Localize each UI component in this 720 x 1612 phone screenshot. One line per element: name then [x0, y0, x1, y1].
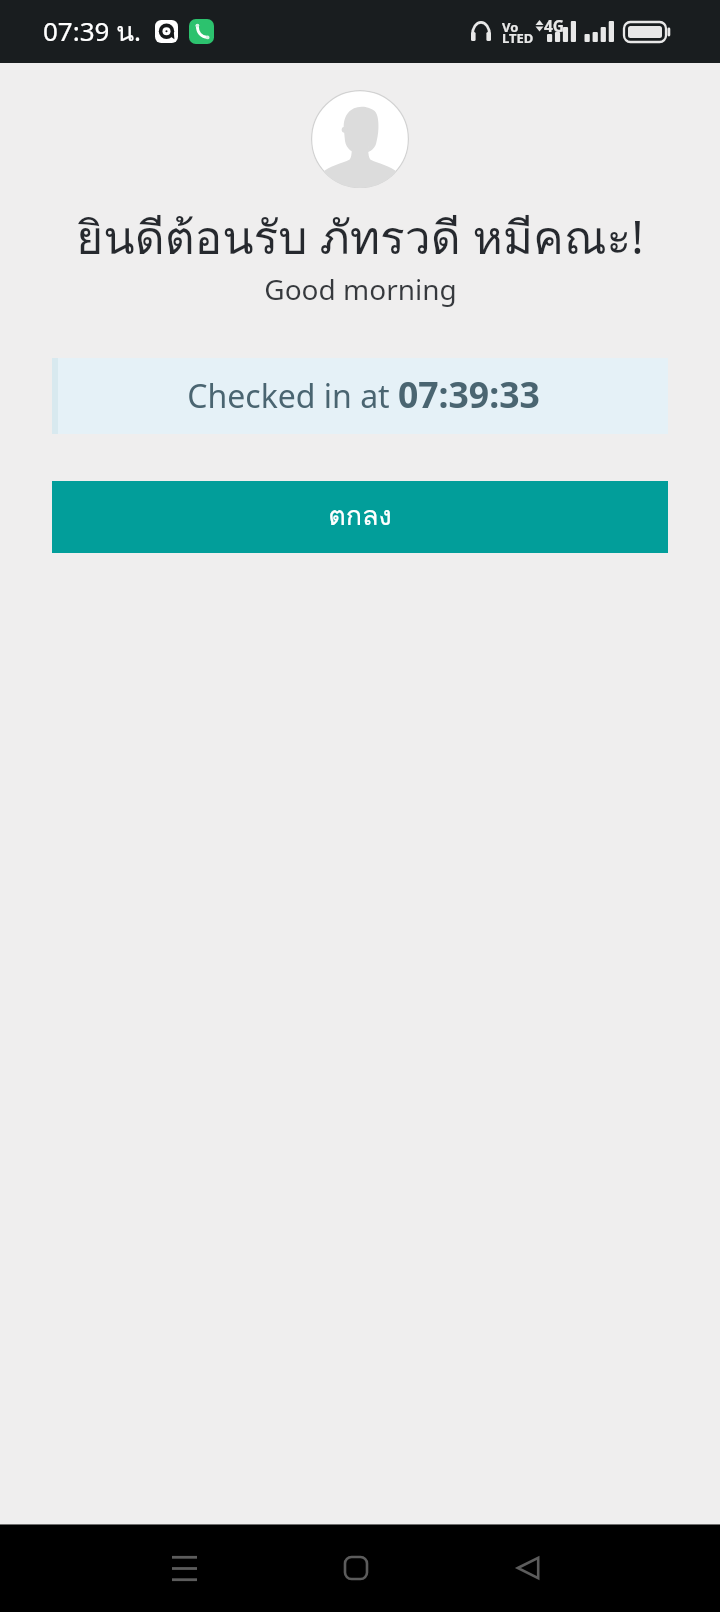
staticText: LTED [502, 29, 534, 47]
staticText: 07:39 น. [43, 11, 141, 52]
staticText: Checked in at 07:39:33 [187, 370, 540, 418]
staticText: 4G [544, 15, 565, 36]
button[interactable]: Checked in at 07:39:33 [52, 358, 668, 434]
button[interactable]: Recent apps [160, 1544, 208, 1592]
staticText: ยินดีต้อนรับ ภัทรวดี หมีคณะ! [76, 201, 644, 274]
staticText: Vo [502, 18, 519, 36]
button[interactable]: Home [332, 1544, 380, 1592]
button[interactable]: Back [504, 1544, 552, 1592]
button[interactable]: ตกลง [52, 481, 668, 553]
staticText: ตกลง [328, 494, 392, 537]
staticText: Good morning [264, 270, 457, 308]
